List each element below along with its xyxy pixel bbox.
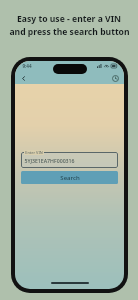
staticText: Easy to use - enter a VIN [17,13,121,25]
button[interactable]: Back [18,73,29,84]
button[interactable]: 5YJ3E1EA7HF000316 [21,152,118,168]
button[interactable]: History [110,73,121,84]
staticText: 5YJ3E1EA7HF000316 [24,157,75,164]
staticText: Search [60,174,80,182]
staticText: Enter VIN [25,150,43,155]
button[interactable]: Search [21,171,118,184]
staticText: and press the search button [9,26,130,38]
staticText: 9:44 [22,63,32,69]
